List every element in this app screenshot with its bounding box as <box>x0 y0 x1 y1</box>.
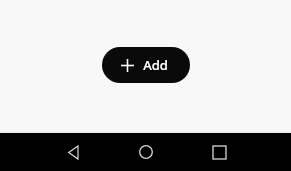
button[interactable]: Back <box>39 133 107 171</box>
button[interactable]: Home <box>112 133 180 171</box>
button[interactable]: Recent apps <box>185 133 253 171</box>
staticText: Add <box>143 56 168 74</box>
button[interactable]: Add <box>102 47 190 83</box>
